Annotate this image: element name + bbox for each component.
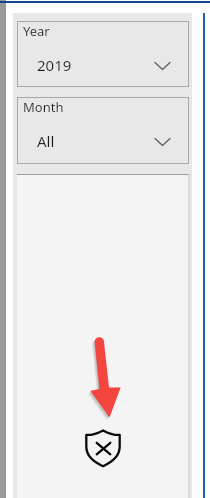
- button[interactable]: Month: [17, 97, 189, 164]
- staticText: 2019: [37, 55, 72, 75]
- other: No results found: [85, 428, 121, 470]
- staticText: All: [37, 131, 55, 151]
- staticText: Year: [23, 22, 50, 40]
- staticText: Month: [23, 98, 64, 116]
- button[interactable]: Year: [17, 21, 189, 87]
